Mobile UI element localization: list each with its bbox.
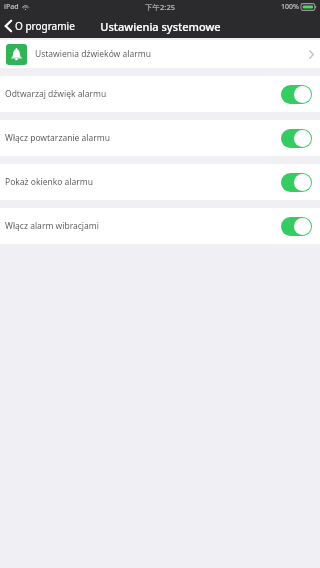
staticText: 100% (281, 2, 299, 12)
other: Open alarm sound settings (309, 50, 314, 59)
button[interactable]: Odtwarzaj dźwięk alarmu (0, 76, 320, 112)
button[interactable]: Toggle on (281, 217, 312, 236)
button[interactable]: Włącz alarm wibracjami (0, 208, 320, 244)
button[interactable]: O programie (0, 14, 81, 38)
staticText: Włącz alarm wibracjami (5, 220, 99, 232)
staticText: Ustawienia systemowe (100, 19, 221, 34)
staticText: Ustawienia dźwieków alarmu (35, 48, 151, 60)
staticText: Pokaż okienko alarmu (5, 176, 94, 188)
button[interactable]: Włącz powtarzanie alarmu (0, 120, 320, 156)
button[interactable]: Toggle on (281, 173, 312, 192)
button[interactable]: Ustawienia dźwieków alarmu (0, 40, 320, 68)
button[interactable]: Toggle on (281, 129, 312, 148)
staticText: iPad (4, 2, 19, 12)
button[interactable]: Pokaż okienko alarmu (0, 164, 320, 200)
staticText: 下午2:25 (145, 2, 175, 12)
staticText: Odtwarzaj dźwięk alarmu (5, 88, 107, 100)
button[interactable]: Toggle on (281, 85, 312, 104)
staticText: Włącz powtarzanie alarmu (5, 132, 111, 144)
staticText: O programie (15, 19, 75, 33)
